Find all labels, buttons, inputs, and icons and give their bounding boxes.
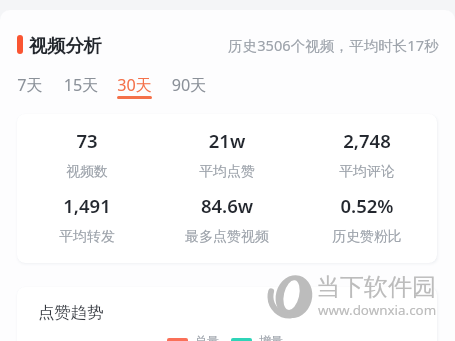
button[interactable]: 7天 (17, 74, 43, 102)
staticText: 增量 (259, 333, 283, 341)
staticText: 当下软件园 (316, 272, 436, 302)
button[interactable]: 增量 (231, 333, 283, 341)
button[interactable]: 73 (17, 114, 437, 263)
staticText: 30天 (117, 74, 152, 96)
staticText: 1,491 (17, 193, 157, 218)
staticText: 视频分析 (29, 34, 102, 57)
button[interactable]: 总量 (167, 333, 219, 341)
staticText: 0.52% (297, 193, 437, 218)
staticText: 历史3506个视频，平均时长17秒 (228, 35, 439, 55)
button[interactable]: 点赞趋势 (17, 287, 437, 341)
staticText: 平均评论 (297, 163, 437, 181)
staticText: www.downxia.com (318, 301, 437, 319)
staticText: 21w (157, 128, 297, 153)
staticText: 视频数 (17, 163, 157, 181)
other: Site logo (267, 273, 316, 322)
button[interactable]: 30天 (117, 74, 152, 102)
staticText: 历史赞粉比 (297, 228, 437, 246)
button[interactable]: 90天 (170, 74, 208, 102)
staticText: 点赞趋势 (38, 302, 104, 323)
staticText: 73 (17, 128, 157, 153)
staticText: 最多点赞视频 (157, 228, 297, 246)
button[interactable]: 15天 (62, 74, 100, 102)
staticText: 平均点赞 (157, 163, 297, 181)
staticText: 90天 (170, 74, 208, 96)
staticText: 总量 (195, 333, 219, 341)
staticText: 平均转发 (17, 228, 157, 246)
staticText: 7天 (17, 74, 43, 96)
staticText: 15天 (62, 74, 100, 96)
staticText: 2,748 (297, 128, 437, 153)
staticText: 84.6w (157, 193, 297, 218)
